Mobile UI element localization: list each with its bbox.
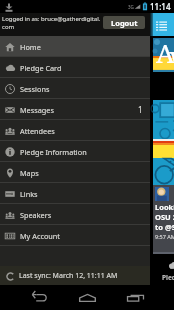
button[interactable]: Lookin bbox=[153, 185, 174, 252]
staticText: Sessions bbox=[20, 84, 50, 94]
staticText: Attendees bbox=[20, 126, 55, 136]
button[interactable]: Attendees bbox=[0, 120, 150, 141]
staticText: Logged in as: bruce@gatherdigital. com bbox=[2, 15, 102, 31]
button[interactable]: My Account bbox=[0, 225, 150, 246]
staticText: 1 bbox=[138, 104, 143, 115]
staticText: Maps bbox=[20, 168, 39, 178]
staticText: Lookin bbox=[155, 202, 174, 212]
button[interactable]: Logout bbox=[103, 16, 145, 29]
staticText: Links bbox=[20, 189, 38, 199]
button[interactable]: Messages bbox=[0, 99, 150, 120]
staticText: Pledge Card bbox=[20, 63, 62, 73]
staticText: My Account bbox=[20, 231, 60, 241]
button[interactable]: A bbox=[153, 38, 174, 72]
button[interactable]: Maps bbox=[0, 162, 150, 183]
staticText: Last sync: March 12, 11:11 AM bbox=[19, 271, 118, 281]
staticText: Logout bbox=[111, 18, 138, 28]
staticText: Pledge bbox=[162, 273, 174, 282]
staticText: A bbox=[156, 35, 174, 69]
button[interactable]: Pledge Information bbox=[0, 141, 150, 162]
button[interactable]: List view bbox=[153, 17, 169, 33]
staticText: 3G bbox=[128, 4, 134, 10]
button[interactable]: Links bbox=[0, 183, 150, 204]
button[interactable] bbox=[153, 100, 174, 139]
button[interactable]: Home bbox=[0, 36, 150, 57]
button[interactable]: Sessions bbox=[0, 78, 150, 99]
button[interactable]: Last sync: March 12, 11:11 AM bbox=[0, 266, 150, 285]
button[interactable]: Pledge Card bbox=[0, 57, 150, 78]
button[interactable]: Speakers bbox=[0, 204, 150, 225]
button[interactable]: Recents bbox=[124, 288, 146, 307]
staticText: 9:57 AM bbox=[155, 233, 174, 240]
staticText: Home bbox=[20, 42, 41, 52]
staticText: OSU 2 bbox=[155, 212, 174, 222]
staticText: Speakers bbox=[20, 210, 52, 220]
staticText: 11:14 bbox=[150, 1, 171, 12]
staticText: to @S bbox=[155, 222, 174, 232]
staticText: W bbox=[169, 42, 174, 76]
button[interactable]: Home bbox=[76, 288, 98, 307]
button[interactable]: Pledge bbox=[153, 254, 174, 285]
staticText: Pledge Information bbox=[20, 147, 87, 157]
staticText: Messages bbox=[20, 105, 54, 115]
button[interactable]: Back bbox=[28, 288, 50, 307]
